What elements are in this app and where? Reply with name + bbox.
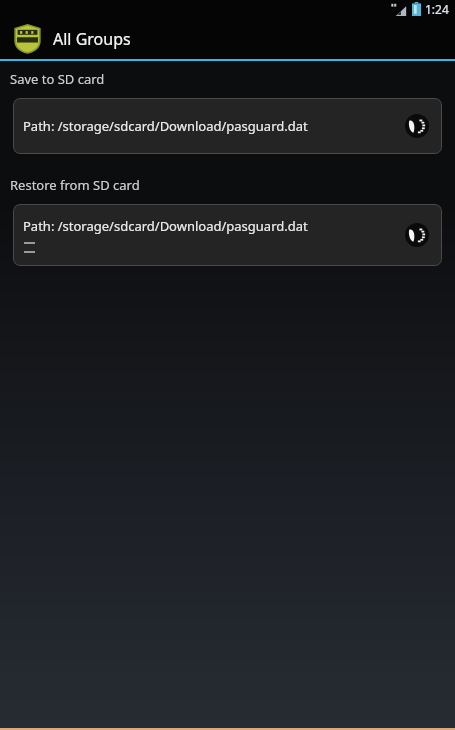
staticText: Path: /storage/sdcard/Download/pasguard.…: [23, 117, 308, 135]
button[interactable]: App logo: [12, 23, 131, 54]
button[interactable]: Save to SD card: [402, 111, 432, 141]
staticText: Path: /storage/sdcard/Download/pasguard.…: [23, 217, 308, 235]
button[interactable]: Restore from SD card: [402, 220, 432, 250]
staticText: Restore from SD card: [10, 176, 140, 194]
staticText: All Groups: [53, 28, 131, 50]
button[interactable]: Path: /storage/sdcard/Download/pasguard.…: [13, 204, 442, 266]
other: App logo: [12, 23, 43, 54]
button[interactable]: Path: /storage/sdcard/Download/pasguard.…: [13, 98, 442, 154]
staticText: 1:24: [425, 1, 449, 17]
staticText: Save to SD card: [10, 70, 105, 88]
